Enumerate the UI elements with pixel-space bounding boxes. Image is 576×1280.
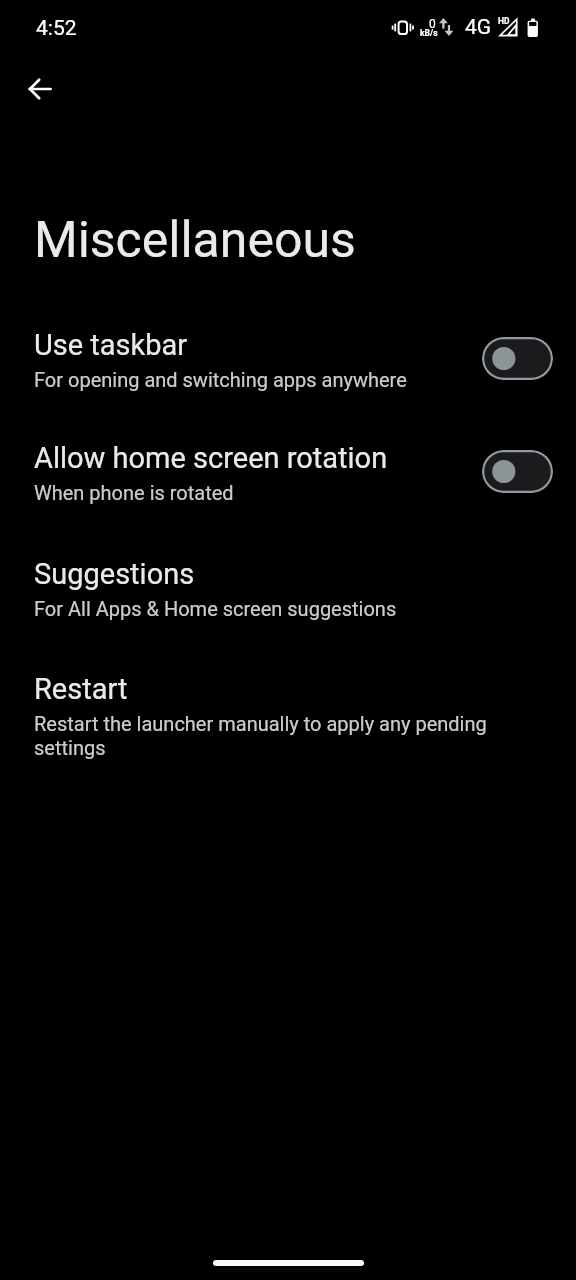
staticText: Use taskbar [34, 328, 188, 362]
staticText: Miscellaneous [34, 211, 356, 270]
staticText: 0 [429, 17, 436, 31]
button[interactable]: Allow home screen rotation [0, 441, 576, 504]
staticText: For opening and switching apps anywhere [34, 368, 407, 391]
staticText: HD [498, 16, 510, 26]
staticText: Allow home screen rotation [34, 441, 388, 475]
staticText: kB/s [420, 28, 438, 38]
staticText: For All Apps & Home screen suggestions [34, 597, 397, 620]
button[interactable]: Toggle setting [482, 337, 553, 380]
staticText: 4G [465, 15, 492, 40]
staticText: Restart the launcher manually to apply a… [34, 712, 508, 760]
button[interactable]: Suggestions [0, 557, 576, 620]
button[interactable]: Restart [0, 672, 576, 760]
staticText: 4:52 [36, 16, 77, 41]
staticText: Suggestions [34, 557, 195, 591]
staticText: When phone is rotated [34, 481, 234, 504]
staticText: Restart [34, 672, 128, 706]
button[interactable]: Use taskbar [0, 328, 576, 391]
button[interactable]: Toggle setting [482, 450, 553, 493]
button[interactable]: Back [16, 65, 64, 113]
